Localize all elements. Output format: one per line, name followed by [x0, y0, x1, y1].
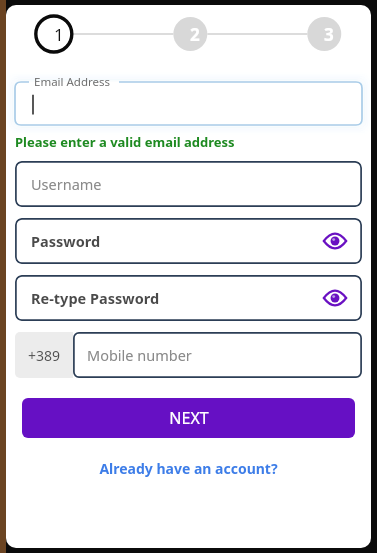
button[interactable]: +389: [15, 332, 73, 378]
staticText: Email Address: [34, 74, 111, 90]
staticText: Re-type Password: [31, 288, 160, 308]
staticText: NEXT: [169, 407, 209, 429]
button[interactable]: Re-type Password: [15, 275, 362, 321]
staticText: +389: [28, 346, 61, 365]
button[interactable]: Username: [15, 161, 362, 207]
staticText: Mobile number: [87, 345, 192, 365]
staticText: Password: [31, 231, 101, 251]
button[interactable]: Email Address: [15, 73, 362, 125]
staticText: Please enter a valid email address: [15, 133, 235, 151]
button[interactable]: NEXT: [22, 398, 355, 438]
staticText: Username: [31, 174, 102, 194]
button[interactable]: Show password: [318, 224, 352, 258]
button[interactable]: Password: [15, 218, 362, 264]
button[interactable]: Show password: [318, 281, 352, 315]
button[interactable]: Already have an account?: [93, 457, 284, 480]
button[interactable]: Mobile number: [73, 332, 362, 378]
